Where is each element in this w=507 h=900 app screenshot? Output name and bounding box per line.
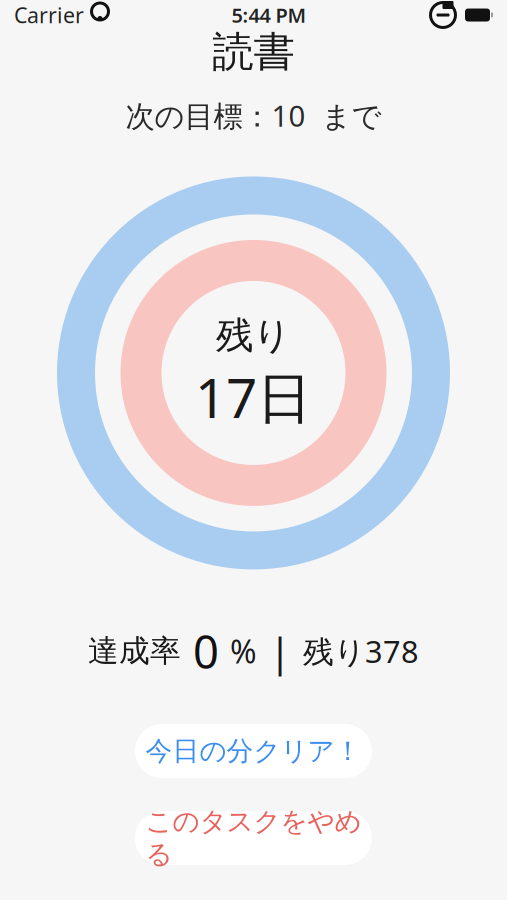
button[interactable]: 今日の分クリア！	[135, 724, 372, 778]
button[interactable]: このタスクをやめる	[135, 811, 372, 865]
staticText: %	[230, 630, 257, 672]
staticText: 達成率	[88, 632, 181, 670]
staticText: 今日の分クリア！	[145, 735, 361, 767]
staticText: 次の目標：10 まで	[125, 96, 381, 135]
staticText: 残り378	[303, 631, 419, 671]
staticText: |	[269, 624, 291, 678]
staticText: 残り	[216, 313, 291, 359]
staticText: 0	[193, 621, 219, 681]
staticText: Carrier	[14, 1, 84, 29]
staticText: 5:44 PM	[231, 2, 306, 28]
staticText: このタスクをやめる	[145, 805, 361, 871]
staticText: 読書	[212, 27, 294, 77]
staticText: 17日	[195, 361, 312, 433]
